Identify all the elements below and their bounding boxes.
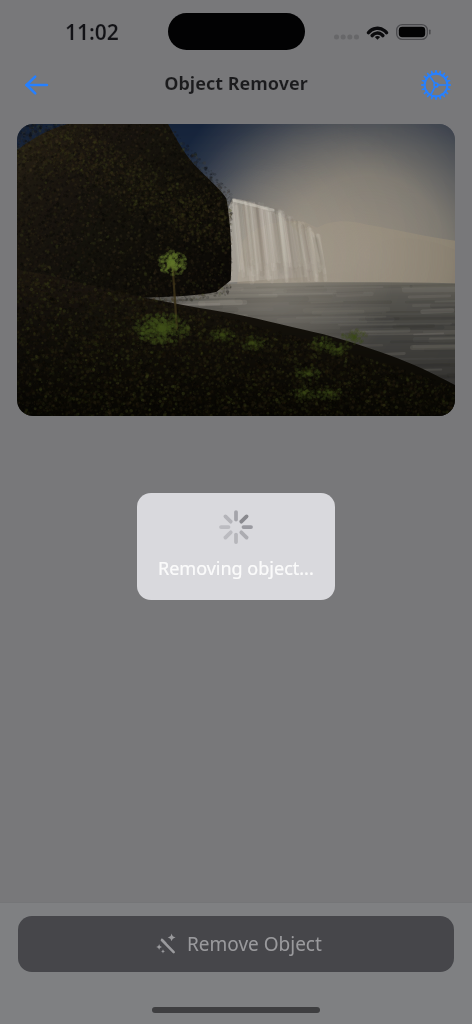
staticText: Remove Object (187, 931, 322, 957)
button[interactable]: Remove Object (18, 916, 454, 972)
staticText: 11:02 (65, 18, 119, 47)
staticText: Object Remover (164, 71, 308, 96)
staticText: Removing object... (158, 556, 314, 581)
button[interactable]: Back (14, 63, 58, 107)
button[interactable]: Settings (414, 63, 458, 107)
